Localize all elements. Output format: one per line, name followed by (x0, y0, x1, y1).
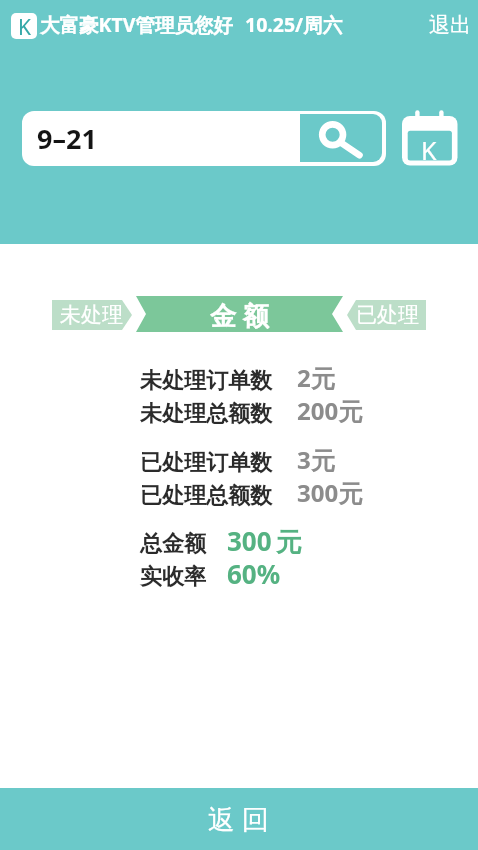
staticText: 未处理订单数 (140, 367, 272, 395)
staticText: 300 元 (227, 523, 302, 559)
staticText: 3元 (297, 443, 335, 476)
button[interactable]: 搜索 (300, 114, 382, 162)
staticText: 退出 (429, 12, 471, 38)
staticText: 2元 (297, 361, 335, 394)
staticText: 金 额 (210, 297, 269, 333)
staticText: 已处理总额数 (140, 482, 272, 510)
staticText: 返 回 (208, 800, 270, 837)
staticText: 实收率 (140, 563, 206, 591)
staticText: 大富豪KTV管理员您好 (40, 11, 233, 38)
staticText: K (421, 133, 437, 167)
staticText: 200元 (297, 394, 363, 427)
staticText: 总金额 (140, 530, 206, 558)
staticText: 未处理 (60, 302, 123, 328)
button[interactable]: 返 回 (0, 788, 478, 850)
staticText: K (18, 13, 31, 39)
button[interactable]: 退出 (425, 7, 475, 43)
staticText: 已处理 (356, 302, 419, 328)
staticText: 300元 (297, 476, 363, 509)
button[interactable]: 选择日期 (396, 105, 462, 171)
staticText: 10.25/周六 (245, 11, 343, 38)
staticText: 60% (227, 556, 281, 591)
staticText: 未处理总额数 (140, 400, 272, 428)
staticText: 已处理订单数 (140, 449, 272, 477)
staticText: 9–21 (37, 120, 97, 157)
